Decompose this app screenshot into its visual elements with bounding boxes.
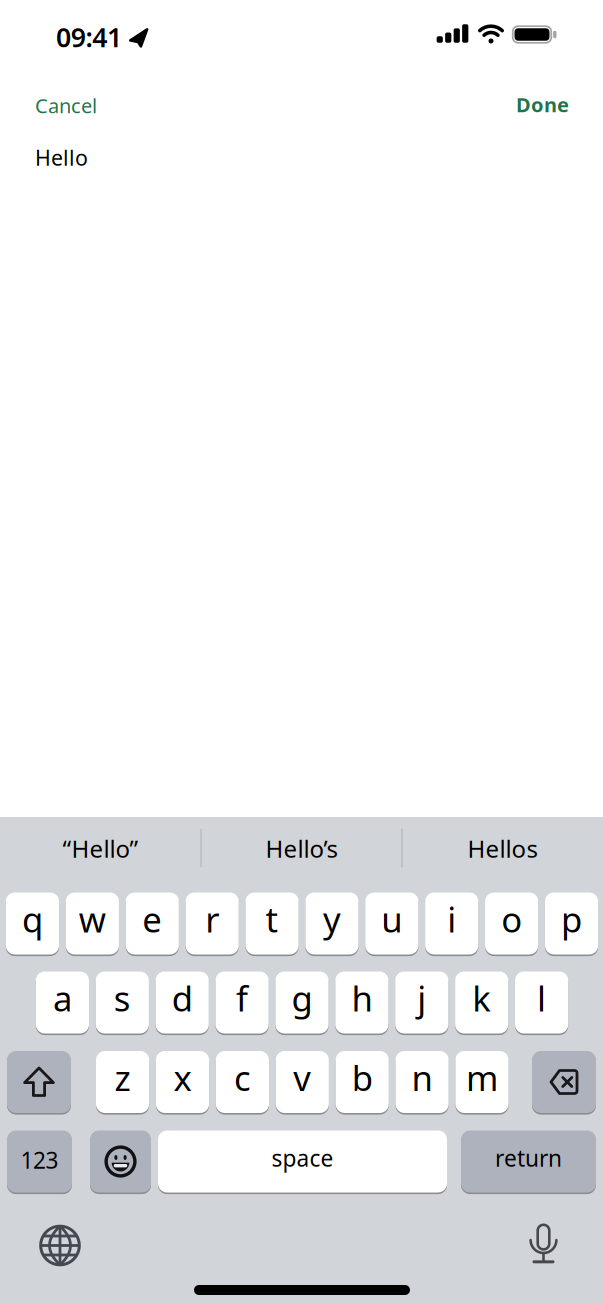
staticText: 09:41 bbox=[56, 19, 122, 55]
staticText: j bbox=[417, 975, 426, 1021]
button[interactable]: Shift bbox=[7, 1051, 71, 1113]
staticText: u bbox=[381, 896, 402, 942]
staticText: 123 bbox=[20, 1145, 58, 1175]
button[interactable]: x bbox=[156, 1051, 209, 1113]
staticText: n bbox=[412, 1054, 433, 1100]
button[interactable]: Delete bbox=[532, 1051, 596, 1113]
button[interactable]: Hello’s bbox=[204, 816, 399, 880]
staticText: r bbox=[205, 896, 219, 942]
button[interactable]: w bbox=[66, 892, 119, 954]
button[interactable]: Emoji bbox=[90, 1130, 151, 1192]
staticText: Hello’s bbox=[265, 833, 337, 864]
staticText: e bbox=[142, 896, 162, 942]
staticText: w bbox=[79, 896, 106, 942]
button[interactable]: g bbox=[275, 971, 329, 1033]
staticText: a bbox=[53, 975, 72, 1021]
button[interactable]: Done bbox=[369, 84, 569, 124]
staticText: q bbox=[22, 896, 43, 942]
staticText: x bbox=[173, 1054, 191, 1100]
staticText: f bbox=[236, 975, 248, 1021]
button[interactable]: c bbox=[216, 1051, 269, 1113]
staticText: Hellos bbox=[467, 833, 537, 864]
staticText: return bbox=[495, 1143, 562, 1173]
staticText: h bbox=[351, 975, 372, 1021]
button[interactable]: v bbox=[276, 1051, 329, 1113]
staticText: c bbox=[234, 1054, 251, 1100]
button[interactable]: h bbox=[335, 971, 388, 1033]
staticText: s bbox=[114, 975, 131, 1021]
button[interactable]: r bbox=[186, 892, 239, 954]
button[interactable]: “Hello” bbox=[3, 816, 198, 880]
staticText: l bbox=[537, 975, 546, 1021]
button[interactable]: m bbox=[455, 1051, 509, 1113]
staticText: o bbox=[501, 896, 522, 942]
staticText: z bbox=[115, 1054, 131, 1100]
staticText: t bbox=[266, 896, 279, 942]
button[interactable]: t bbox=[245, 892, 299, 954]
button[interactable]: y bbox=[305, 892, 359, 954]
button[interactable]: n bbox=[395, 1051, 449, 1113]
staticText: m bbox=[466, 1054, 498, 1100]
button[interactable]: u bbox=[365, 892, 418, 954]
button[interactable]: f bbox=[215, 971, 269, 1033]
button[interactable]: p bbox=[545, 892, 598, 954]
button[interactable]: b bbox=[336, 1051, 389, 1113]
button[interactable]: q bbox=[6, 892, 59, 954]
staticText: k bbox=[472, 975, 491, 1021]
staticText: i bbox=[447, 896, 456, 942]
button[interactable]: Numbers bbox=[7, 1130, 72, 1192]
staticText: d bbox=[172, 975, 193, 1021]
staticText: v bbox=[293, 1054, 311, 1100]
staticText: “Hello” bbox=[62, 833, 138, 864]
staticText: b bbox=[352, 1054, 373, 1100]
button[interactable]: Dictation bbox=[525, 1223, 561, 1267]
staticText: g bbox=[291, 975, 312, 1021]
staticText: Done bbox=[516, 91, 569, 118]
staticText: Cancel bbox=[35, 92, 97, 119]
button[interactable]: return bbox=[461, 1130, 596, 1192]
button[interactable]: o bbox=[485, 892, 538, 954]
button[interactable]: Hellos bbox=[405, 816, 600, 880]
button[interactable]: a bbox=[36, 971, 89, 1033]
button[interactable]: j bbox=[395, 971, 448, 1033]
staticText: Hello bbox=[35, 143, 88, 172]
button[interactable]: s bbox=[96, 971, 149, 1033]
staticText: y bbox=[323, 896, 341, 942]
staticText: p bbox=[561, 896, 582, 942]
staticText: space bbox=[271, 1143, 333, 1173]
button[interactable]: space bbox=[158, 1130, 447, 1192]
button[interactable]: l bbox=[515, 971, 568, 1033]
button[interactable]: Next keyboard bbox=[38, 1223, 82, 1267]
button[interactable]: Cancel bbox=[35, 85, 235, 125]
button[interactable]: i bbox=[425, 892, 478, 954]
button[interactable]: z bbox=[96, 1051, 149, 1113]
button[interactable]: k bbox=[455, 971, 508, 1033]
button[interactable]: d bbox=[156, 971, 209, 1033]
button[interactable]: e bbox=[126, 892, 179, 954]
